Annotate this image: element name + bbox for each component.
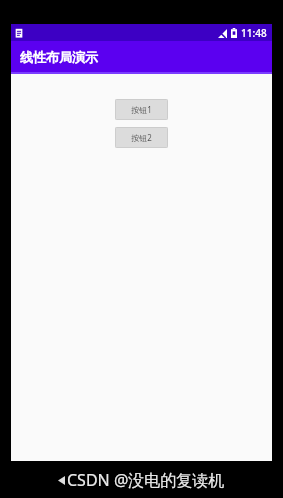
staticText: 按钮2 bbox=[131, 132, 152, 143]
staticText: 按钮1 bbox=[131, 104, 152, 115]
button[interactable]: 按钮2 bbox=[115, 127, 168, 148]
button[interactable]: 按钮1 bbox=[115, 99, 168, 120]
staticText: 11:48 bbox=[241, 26, 267, 40]
staticText: CSDN @没电的复读机 bbox=[67, 469, 225, 491]
staticText: 线性布局演示 bbox=[20, 49, 98, 65]
